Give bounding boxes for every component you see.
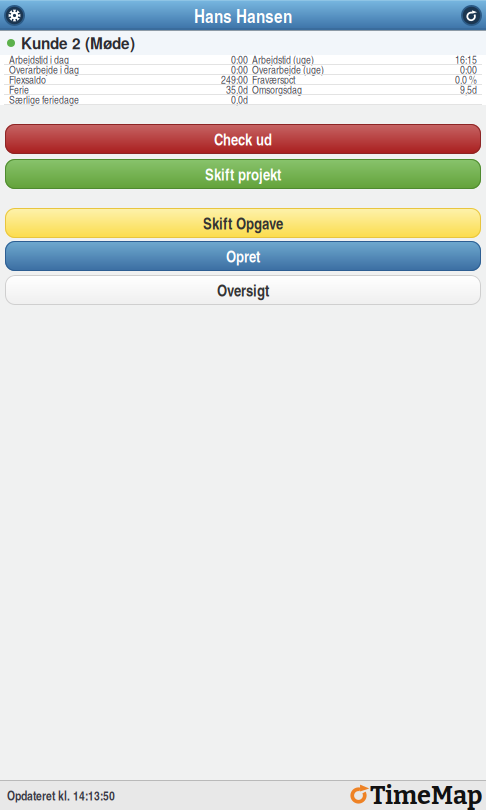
button[interactable]: Check ud (0, 124, 486, 154)
staticText: 0:00 (460, 62, 477, 77)
staticText: Særlige feriedage (9, 92, 79, 107)
staticText: Check ud (214, 128, 272, 150)
staticText: Oversigt (217, 279, 269, 301)
button[interactable]: Opret (0, 241, 486, 271)
staticText: 35,0d (226, 82, 248, 97)
staticText: TimeMap (370, 780, 482, 810)
staticText: Overarbejde (uge) (252, 62, 324, 77)
staticText: Ferie (9, 82, 29, 97)
staticText: 0,0d (231, 92, 248, 107)
button[interactable]: Refresh (455, 1, 486, 30)
staticText: Overarbejde i dag (9, 62, 79, 77)
button[interactable]: Oversigt (0, 275, 486, 305)
button[interactable]: Settings (0, 1, 31, 30)
staticText: 249:00 (221, 72, 248, 87)
staticText: Fraværspct (252, 72, 295, 87)
staticText: 0:00 (231, 62, 248, 77)
staticText: Arbejdstid i dag (9, 52, 69, 67)
staticText: Skift Opgave (203, 212, 283, 234)
staticText: Hans Hansen (194, 2, 292, 29)
staticText: 0,0 % (455, 72, 477, 87)
button[interactable]: Skift projekt (0, 159, 486, 189)
staticText: 0:00 (231, 52, 248, 67)
staticText: Skift projekt (205, 163, 281, 185)
staticText: 9,5d (460, 82, 477, 97)
button[interactable]: Skift Opgave (0, 208, 486, 238)
staticText: 16:15 (455, 52, 477, 67)
staticText: Arbejdstid (uge) (252, 52, 314, 67)
staticText: Omsorgsdag (252, 82, 302, 97)
staticText: Opret (226, 245, 260, 267)
staticText: Opdateret kl. 14:13:50 (7, 787, 115, 804)
staticText: Flexsaldo (9, 72, 46, 87)
staticText: Kunde 2 (Møde) (21, 32, 135, 54)
